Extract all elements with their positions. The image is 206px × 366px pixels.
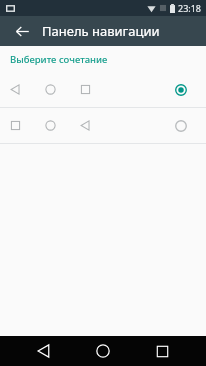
button[interactable]: Back	[8, 17, 36, 45]
button[interactable]: Recent apps	[147, 336, 177, 366]
button[interactable]: Option	[0, 108, 206, 143]
button[interactable]: Home	[88, 336, 118, 366]
staticText: Выберите сочетание	[10, 53, 108, 66]
button[interactable]: Selected option	[169, 78, 193, 102]
button[interactable]: Option	[169, 114, 193, 138]
button[interactable]: Back	[29, 336, 59, 366]
staticText: 23:18	[178, 2, 202, 14]
button[interactable]: Selected option	[0, 72, 206, 107]
staticText: Панель навигации	[42, 22, 160, 40]
